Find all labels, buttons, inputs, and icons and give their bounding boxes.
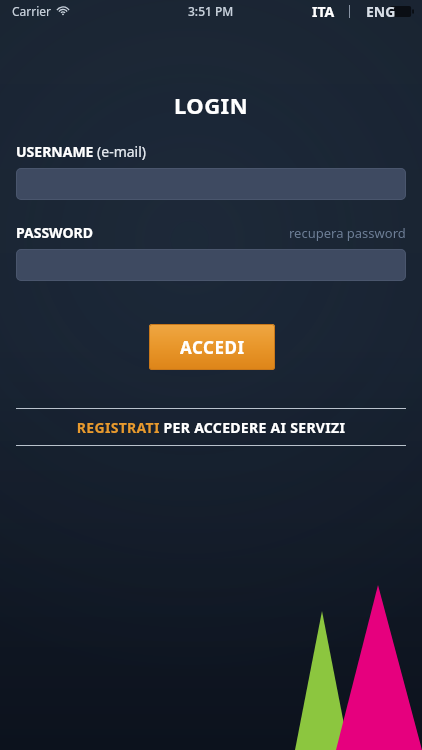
- staticText: PASSWORD: [16, 223, 94, 242]
- staticText: REGISTRATI PER ACCEDERE AI SERVIZI: [0, 418, 422, 437]
- staticText: USERNAME (e-mail): [16, 142, 147, 161]
- button[interactable]: [16, 168, 406, 200]
- staticText: recupera password: [289, 224, 406, 242]
- staticText: LOGIN: [0, 90, 422, 120]
- staticText: ACCEDI: [180, 336, 245, 359]
- button[interactable]: recupera password: [289, 224, 406, 242]
- staticText: Carrier: [12, 3, 52, 19]
- button[interactable]: ENG: [362, 0, 400, 22]
- staticText: ENG: [366, 2, 396, 20]
- button[interactable]: REGISTRATI PER ACCEDERE AI SERVIZI: [0, 408, 422, 446]
- button[interactable]: ITA: [308, 0, 339, 22]
- button[interactable]: ACCEDI: [149, 324, 275, 370]
- staticText: 3:51 PM: [188, 3, 234, 19]
- button[interactable]: [16, 249, 406, 281]
- staticText: ITA: [312, 2, 335, 20]
